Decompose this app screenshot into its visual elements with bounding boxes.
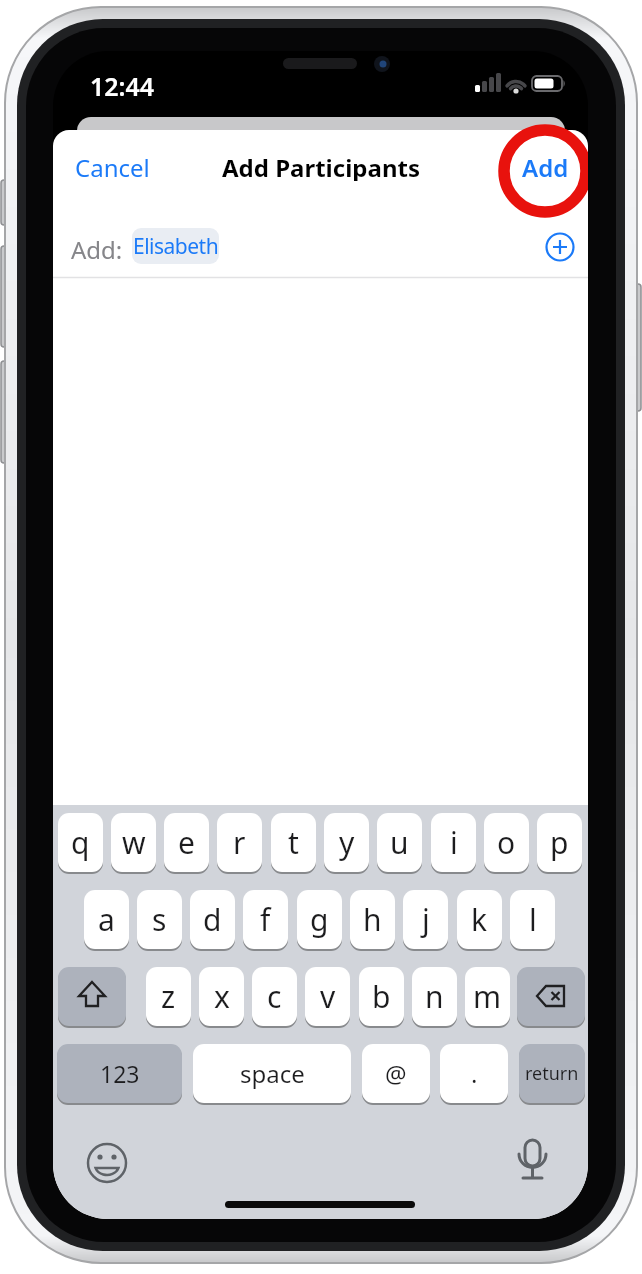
button[interactable]: Cancel [75, 151, 155, 181]
staticText: p [550, 822, 569, 863]
button[interactable]: Elisabeth [132, 228, 219, 264]
button[interactable]: s [137, 890, 182, 949]
staticText: o [497, 822, 516, 863]
button[interactable] [511, 1138, 554, 1181]
staticText: q [71, 822, 90, 863]
staticText: space [240, 1057, 305, 1090]
button[interactable]: u [377, 813, 422, 872]
button[interactable]: r [217, 813, 262, 872]
button[interactable]: f [243, 890, 288, 949]
button[interactable]: o [484, 813, 529, 872]
button[interactable]: c [252, 967, 297, 1026]
button[interactable]: d [190, 890, 235, 949]
button[interactable]: g [297, 890, 342, 949]
staticText: y [339, 822, 355, 863]
button[interactable]: space [193, 1044, 351, 1103]
staticText: w [122, 822, 146, 863]
staticText: i [450, 822, 458, 863]
staticText: Cancel [75, 151, 150, 181]
staticText: m [473, 976, 502, 1017]
staticText: Add Participants [222, 151, 420, 181]
staticText: 123 [100, 1058, 140, 1089]
staticText: @ [385, 1057, 407, 1090]
button[interactable]: @ [362, 1044, 430, 1103]
button[interactable]: h [350, 890, 395, 949]
staticText: l [529, 899, 537, 940]
button[interactable]: l [510, 890, 555, 949]
button[interactable]: Add [515, 151, 576, 181]
button[interactable]: p [537, 813, 582, 872]
staticText: . [471, 1057, 478, 1090]
button[interactable]: j [403, 890, 448, 949]
staticText: g [310, 899, 329, 940]
button[interactable]: y [324, 813, 369, 872]
staticText: r [233, 822, 246, 863]
button[interactable]: w [111, 813, 156, 872]
button[interactable]: a [84, 890, 129, 949]
button[interactable]: e [164, 813, 209, 872]
staticText: return [525, 1061, 579, 1086]
button[interactable]: t [271, 813, 316, 872]
button[interactable] [544, 231, 576, 263]
staticText: c [267, 976, 282, 1017]
staticText: z [161, 976, 176, 1017]
staticText: u [390, 822, 409, 863]
staticText: v [320, 976, 336, 1017]
staticText: b [372, 976, 391, 1017]
staticText: e [178, 822, 195, 863]
staticText: x [214, 976, 230, 1017]
staticText: s [152, 899, 167, 940]
staticText: Elisabeth [133, 232, 219, 261]
button[interactable]: z [146, 967, 191, 1026]
staticText: j [422, 899, 430, 940]
button[interactable]: x [199, 967, 244, 1026]
staticText: a [98, 899, 115, 940]
button[interactable]: m [465, 967, 510, 1026]
button[interactable]: v [305, 967, 350, 1026]
button[interactable] [58, 967, 126, 1026]
button[interactable]: n [412, 967, 457, 1026]
button[interactable]: return [519, 1044, 585, 1103]
button[interactable]: k [457, 890, 502, 949]
staticText: n [425, 976, 444, 1017]
button[interactable] [517, 967, 585, 1026]
staticText: 12:44 [90, 69, 155, 101]
button[interactable]: b [359, 967, 404, 1026]
staticText: Add: [71, 233, 123, 263]
staticText: f [260, 899, 271, 940]
staticText: Add [522, 151, 569, 181]
staticText: d [203, 899, 222, 940]
button[interactable] [86, 1142, 128, 1184]
button[interactable]: . [440, 1044, 508, 1103]
staticText: h [363, 899, 382, 940]
button[interactable]: 123 [57, 1044, 182, 1103]
staticText: t [288, 822, 299, 863]
button[interactable]: i [431, 813, 476, 872]
staticText: k [471, 899, 488, 940]
button[interactable]: q [58, 813, 103, 872]
